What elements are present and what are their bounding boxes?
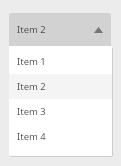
- staticText: Item 4: [17, 130, 46, 143]
- button[interactable]: Item 2: [9, 13, 111, 46]
- staticText: Item 1: [17, 55, 46, 68]
- button[interactable]: Item 4: [9, 124, 112, 149]
- staticText: Item 3: [17, 105, 46, 118]
- staticText: Item 2: [17, 23, 46, 36]
- button[interactable]: Item 1: [9, 49, 112, 74]
- staticText: Item 2: [17, 80, 46, 93]
- button[interactable]: Item 3: [9, 99, 112, 124]
- button[interactable]: Item 2: [9, 74, 112, 99]
- other: Collapse dropdown: [94, 27, 103, 33]
